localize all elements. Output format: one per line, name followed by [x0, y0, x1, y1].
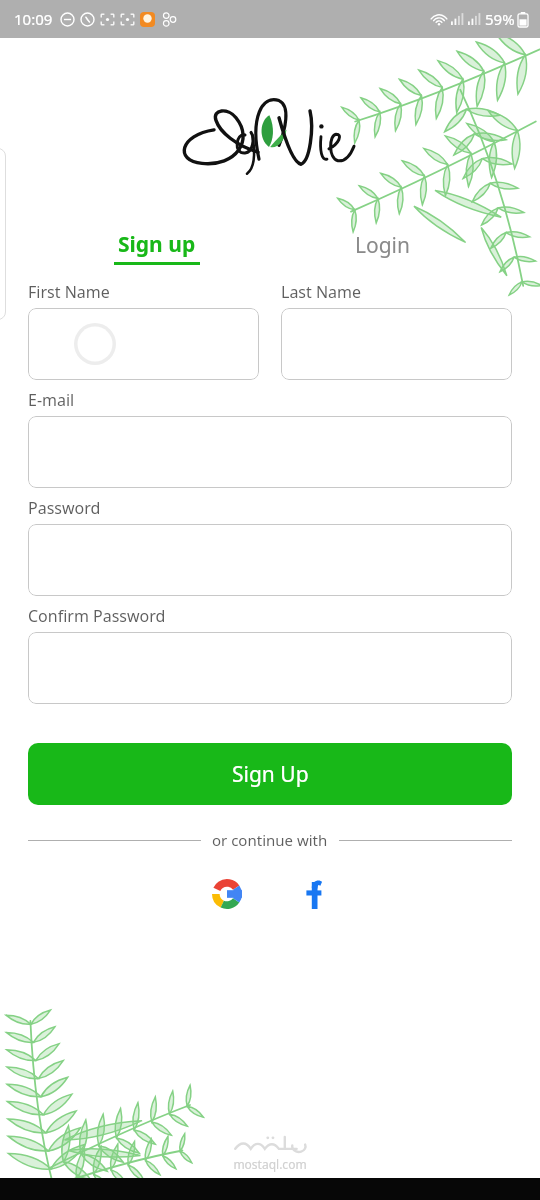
- button[interactable]: Continue with Google: [204, 871, 250, 917]
- button[interactable]: [28, 308, 259, 380]
- staticText: Login: [355, 231, 411, 260]
- button[interactable]: [28, 632, 512, 704]
- button[interactable]: [281, 308, 512, 380]
- staticText: 10:09: [14, 9, 53, 29]
- staticText: or continue with: [212, 830, 328, 850]
- staticText: Password: [28, 497, 101, 519]
- button[interactable]: Sign up: [44, 230, 270, 265]
- button[interactable]: Sign Up: [28, 743, 512, 805]
- staticText: Confirm Password: [28, 605, 166, 627]
- staticText: Last Name: [281, 281, 362, 303]
- staticText: E-mail: [28, 389, 75, 411]
- button[interactable]: [28, 524, 512, 596]
- button[interactable]: Login: [270, 231, 496, 265]
- staticText: Sign Up: [232, 760, 309, 789]
- button[interactable]: [28, 416, 512, 488]
- staticText: Sign up: [118, 230, 196, 259]
- staticText: First Name: [28, 281, 110, 303]
- button[interactable]: Continue with Facebook: [290, 871, 336, 917]
- staticText: mostaql.com: [233, 1156, 307, 1172]
- staticText: 59%: [485, 9, 515, 29]
